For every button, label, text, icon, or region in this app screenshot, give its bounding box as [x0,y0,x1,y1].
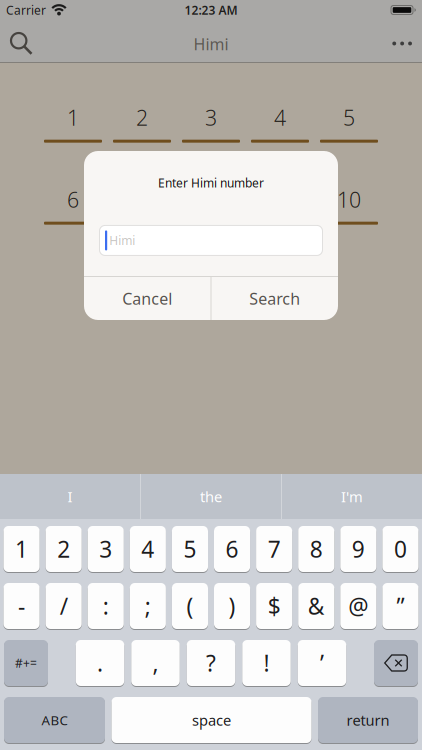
button[interactable]: ) [214,583,250,629]
staticText: the [200,487,222,506]
button[interactable]: . [76,640,124,686]
button[interactable]: 1 [44,103,102,143]
button[interactable]: Search [211,277,338,320]
button[interactable]: ’ [298,640,346,686]
button[interactable]: 8 [298,526,334,572]
staticText: 3 [99,534,112,564]
staticText: 7 [268,534,281,564]
button[interactable]: 3 [88,526,124,572]
staticText: 10 [337,185,361,214]
button[interactable]: Himi number [99,225,323,256]
button[interactable]: More [392,36,422,45]
button[interactable]: 3 [182,103,240,143]
staticText: Enter Himi number [158,175,264,191]
button[interactable]: : [88,583,124,629]
button[interactable]: 2 [113,103,171,143]
staticText: Himi [193,33,228,55]
staticText: I [67,487,72,506]
staticText: 6 [225,534,238,564]
button[interactable]: 7 [256,526,292,572]
staticText: ABC [41,711,67,729]
staticText: I'm [341,487,363,506]
button[interactable]: @ [340,583,376,629]
staticText: / [60,591,68,621]
button[interactable]: ? [187,640,235,686]
button[interactable]: / [46,583,82,629]
button[interactable]: & [298,583,334,629]
staticText: return [346,710,389,730]
button[interactable]: return [318,697,418,743]
button[interactable]: Delete [374,640,418,686]
staticText: 6 [67,185,79,214]
button[interactable]: 9 [251,185,309,225]
button[interactable]: 5 [320,103,378,143]
staticText: 5 [343,103,355,132]
button[interactable]: , [131,640,180,686]
button[interactable]: 6 [44,185,102,225]
button[interactable]: 2 [46,526,82,572]
staticText: , [152,648,158,678]
button[interactable]: ( [172,583,208,629]
button[interactable]: 9 [340,526,376,572]
staticText: 8 [310,534,323,564]
staticText: Cancel [122,288,172,309]
button[interactable]: $ [256,583,292,629]
staticText: 4 [274,103,286,132]
button[interactable]: Search [0,27,33,55]
staticText: 1 [15,534,28,564]
button[interactable]: 7 [113,185,171,225]
staticText: 8 [205,185,217,214]
staticText: . [97,648,103,678]
staticText: 3 [205,103,217,132]
staticText: space [192,710,231,730]
button[interactable]: #+= [4,640,48,686]
staticText: ) [228,591,235,621]
staticText: $ [268,591,281,621]
button[interactable]: ; [130,583,166,629]
staticText: @ [348,591,368,621]
staticText: Carrier [6,2,46,18]
staticText: & [308,591,325,621]
staticText: : [103,591,109,621]
staticText: ! [263,648,269,678]
button[interactable]: 5 [172,526,208,572]
staticText: 5 [183,534,196,564]
staticText: 1 [67,103,79,132]
staticText: Himi [109,232,135,248]
staticText: 12:23 AM [184,2,237,18]
button[interactable]: I'm [282,487,422,506]
button[interactable]: 4 [251,103,309,143]
staticText: ” [396,591,404,621]
button[interactable]: 4 [130,526,166,572]
button[interactable]: - [3,583,40,629]
button[interactable]: ! [242,640,291,686]
button[interactable]: the [141,487,281,506]
button[interactable]: 0 [382,526,418,572]
staticText: #+= [15,655,37,671]
staticText: ’ [320,648,324,678]
staticText: Search [249,288,300,309]
staticText: 2 [57,534,70,564]
staticText: ; [145,591,151,621]
button[interactable]: ABC [4,697,105,743]
button[interactable]: 8 [182,185,240,225]
button[interactable]: 1 [3,526,40,572]
button[interactable]: 6 [214,526,250,572]
button[interactable]: Cancel [84,277,210,320]
staticText: - [18,591,25,621]
button[interactable]: space [111,697,311,743]
button[interactable]: I [0,487,140,506]
staticText: 4 [141,534,154,564]
staticText: ( [186,591,193,621]
staticText: ? [206,648,216,678]
button[interactable]: ” [382,583,418,629]
button[interactable]: 10 [320,185,378,225]
staticText: 2 [136,103,148,132]
staticText: 0 [394,534,407,564]
staticText: 9 [352,534,365,564]
